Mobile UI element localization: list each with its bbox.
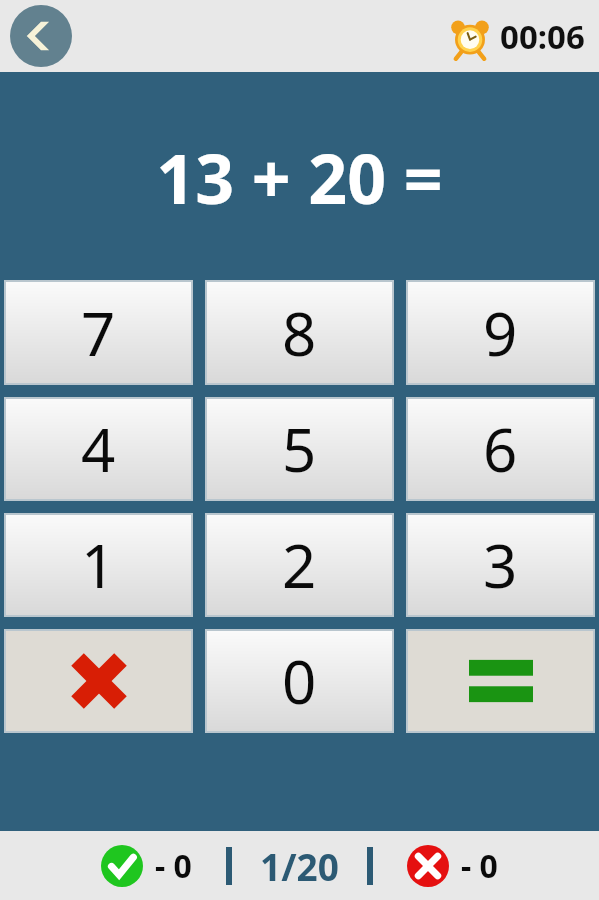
- button[interactable]: 2: [205, 513, 394, 617]
- staticText: 0: [282, 640, 317, 722]
- staticText: 5: [282, 408, 317, 490]
- staticText: 2: [282, 524, 317, 606]
- button[interactable]: 6: [406, 397, 595, 501]
- staticText: 9: [483, 292, 518, 374]
- button[interactable]: 7: [4, 280, 193, 385]
- button[interactable]: - 0: [401, 844, 504, 888]
- button[interactable]: 0: [205, 629, 394, 733]
- button[interactable]: Equals: [406, 629, 595, 733]
- button[interactable]: 5: [205, 397, 394, 501]
- button[interactable]: 3: [406, 513, 595, 617]
- staticText: 7: [81, 292, 116, 374]
- staticText: 6: [483, 408, 518, 490]
- staticText: 1/20: [260, 841, 339, 891]
- staticText: 13 + 20 =: [156, 131, 443, 224]
- staticText: - 0: [461, 844, 498, 888]
- staticText: 8: [282, 292, 317, 374]
- staticText: - 0: [155, 844, 192, 888]
- button[interactable]: 1: [4, 513, 193, 617]
- button[interactable]: 9: [406, 280, 595, 385]
- staticText: 1: [81, 524, 116, 606]
- staticText: 3: [483, 524, 518, 606]
- staticText: 4: [81, 408, 116, 490]
- button[interactable]: Back: [10, 5, 72, 67]
- staticText: 00:06: [500, 14, 585, 59]
- button[interactable]: 8: [205, 280, 394, 385]
- button[interactable]: 4: [4, 397, 193, 501]
- button[interactable]: - 0: [95, 844, 198, 888]
- button[interactable]: Clear: [4, 629, 193, 733]
